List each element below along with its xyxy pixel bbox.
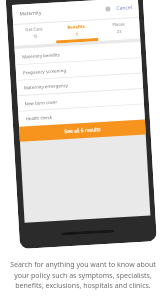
button[interactable]: See all 6 results — [19, 119, 146, 142]
button[interactable]: Get Care — [13, 23, 56, 46]
staticText: 15 — [33, 34, 38, 39]
staticText: Benefits — [67, 24, 86, 31]
button[interactable]: New born cover — [17, 89, 144, 112]
staticText: Places — [112, 21, 125, 28]
staticText: Maternity — [19, 6, 104, 18]
button[interactable]: Pregnancy screening — [15, 58, 142, 81]
button[interactable]: Places — [97, 18, 140, 41]
staticText: Maternity benefits — [22, 51, 60, 59]
staticText: 23 — [117, 29, 122, 34]
staticText: Search for anything you want to know abo… — [5, 260, 161, 290]
button[interactable]: Clear search — [103, 4, 113, 14]
staticText: Maternity emergency — [24, 82, 69, 90]
staticText: Pregnancy screening — [23, 67, 67, 75]
button[interactable]: Maternity benefits — [15, 42, 141, 65]
staticText: See all 6 results — [64, 126, 101, 135]
button[interactable]: Health check — [18, 104, 145, 127]
button[interactable]: Benefits — [55, 20, 98, 43]
button[interactable]: Maternity emergency — [16, 73, 143, 96]
staticText: Health check — [25, 114, 53, 121]
staticText: New born cover — [25, 98, 58, 106]
button[interactable]: Cancel — [116, 4, 133, 12]
staticText: Get Care — [25, 26, 44, 33]
staticText: 6 — [76, 31, 79, 36]
